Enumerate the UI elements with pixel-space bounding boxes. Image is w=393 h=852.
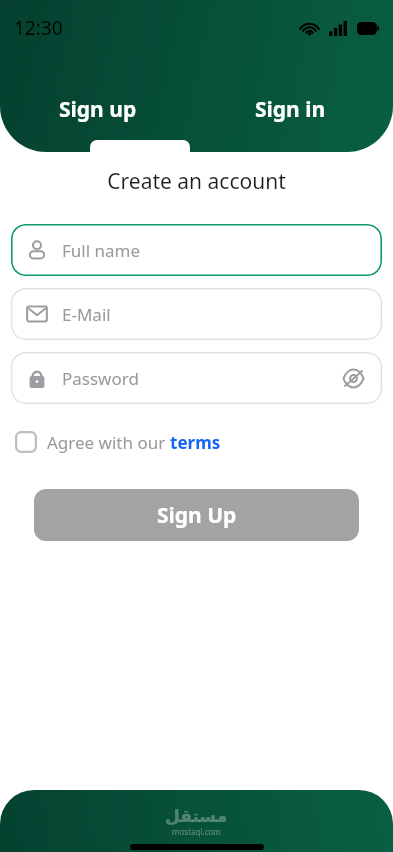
staticText: Sign in (255, 95, 326, 124)
staticText: Create an account (107, 167, 286, 196)
button[interactable]: Password (11, 352, 382, 404)
button[interactable]: Sign in (196, 82, 393, 152)
staticText: Sign up (59, 95, 137, 124)
staticText: mostaql.com (172, 826, 221, 837)
button[interactable]: terms (170, 431, 221, 454)
button[interactable]: Agree with our (12, 426, 223, 458)
button[interactable]: Show password (338, 363, 368, 393)
button[interactable]: Full name (11, 224, 382, 276)
staticText: Full name (62, 239, 141, 262)
button[interactable]: E-Mail (11, 288, 382, 340)
staticText: Password (62, 367, 139, 390)
button[interactable]: Sign Up (34, 489, 359, 541)
staticText: مستقل (165, 806, 228, 826)
staticText: E-Mail (62, 303, 111, 326)
staticText: Agree with our (47, 431, 170, 454)
staticText: Sign Up (157, 501, 237, 530)
button[interactable]: Sign up (0, 82, 196, 152)
staticText: 12:30 (14, 15, 63, 41)
